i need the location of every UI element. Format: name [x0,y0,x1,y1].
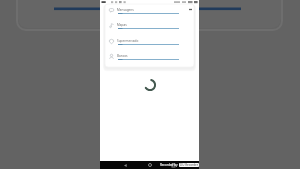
staticText: Recorded by [160,163,178,167]
staticText: Bancos [117,54,128,58]
other: Loading [143,78,157,92]
staticText: DU Recorder [180,163,198,167]
button[interactable]: Recent apps [169,161,178,169]
button[interactable]: Mensagens [105,6,194,17]
staticText: Mensagens [117,8,134,12]
button[interactable]: Supermercado [105,37,194,48]
button[interactable]: Bancos [105,52,194,63]
staticText: Supermercado [117,39,139,43]
button[interactable]: Back [121,161,130,169]
button[interactable]: Mapas [105,21,194,32]
staticText: Mapas [117,23,127,27]
button[interactable]: Home [145,161,154,169]
